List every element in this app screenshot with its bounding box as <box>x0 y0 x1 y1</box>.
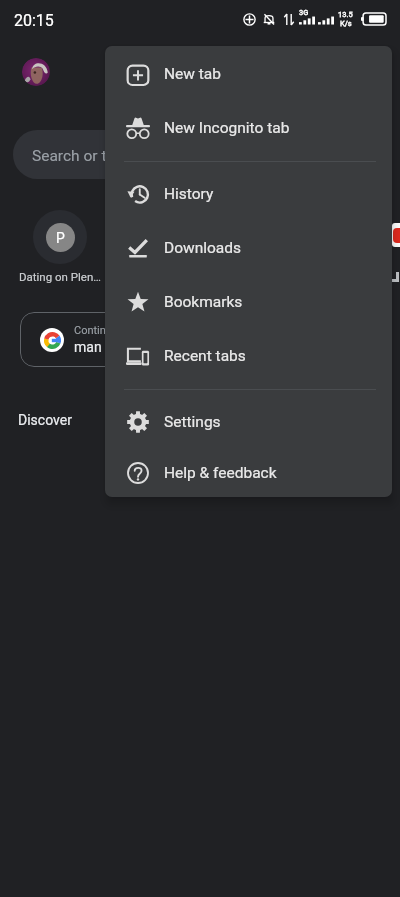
staticText: Search or type web address <box>32 147 223 165</box>
staticText: Downloads <box>164 239 242 257</box>
staticText: Discover <box>18 412 72 428</box>
button[interactable]: New Incognito tab <box>105 101 392 155</box>
staticText: Bookmarks <box>164 293 243 311</box>
staticText: Settings <box>164 413 221 431</box>
button[interactable]: Continue browsing <box>20 312 350 367</box>
staticText: Dating on Plen… <box>19 270 101 283</box>
staticText: Help & feedback <box>164 464 277 482</box>
button[interactable]: Search or type web address <box>13 130 323 179</box>
staticText: History <box>164 185 214 203</box>
staticText: Continue browsing <box>74 324 166 337</box>
staticText: K/s <box>340 19 352 28</box>
button[interactable]: Downloads <box>105 221 392 275</box>
button[interactable]: Help & feedback <box>105 449 392 497</box>
button[interactable]: Bookmarks <box>105 275 392 329</box>
button[interactable]: Recent tabs <box>105 329 392 383</box>
staticText: P <box>56 230 65 246</box>
button[interactable]: P <box>33 210 87 264</box>
staticText: man u <box>74 339 113 355</box>
button[interactable]: History <box>105 167 392 221</box>
staticText: New tab <box>164 65 221 83</box>
staticText: 3G <box>299 8 309 17</box>
staticText: Recent tabs <box>164 347 246 365</box>
button[interactable]: Settings <box>105 395 392 449</box>
button[interactable]: Account <box>22 58 50 86</box>
button[interactable]: New tab <box>105 47 392 101</box>
staticText: 13.5 <box>338 10 353 19</box>
staticText: New Incognito tab <box>164 119 290 137</box>
staticText: 20:15 <box>14 11 54 30</box>
